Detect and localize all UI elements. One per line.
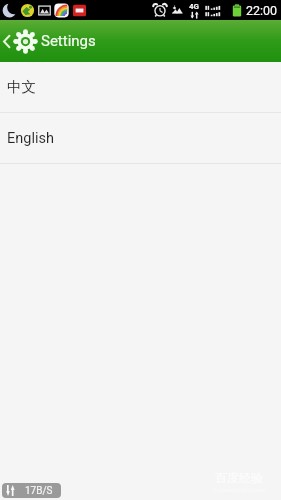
staticText: English (7, 130, 54, 147)
button[interactable]: 中文 (0, 62, 281, 112)
staticText: Settings (41, 32, 96, 50)
button[interactable]: Navigate up (0, 20, 102, 62)
button[interactable]: Network speed 17 bytes per second (2, 483, 61, 498)
staticText: 中文 (7, 78, 36, 96)
staticText: 17B/S (25, 485, 53, 497)
button[interactable]: English (0, 113, 281, 163)
staticText: 22:00 (246, 3, 278, 18)
staticText: 4G (189, 2, 200, 11)
